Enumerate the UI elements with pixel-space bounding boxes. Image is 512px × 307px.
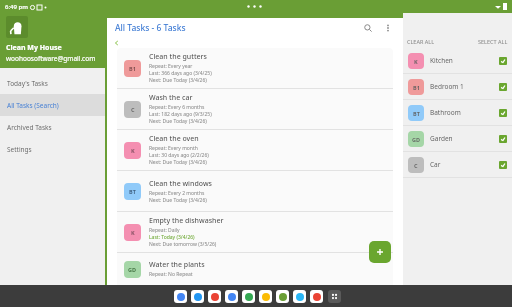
staticText: Water the plants: [149, 260, 205, 270]
button[interactable]: B1: [403, 74, 512, 99]
staticText: Repeat: No Repeat: [149, 271, 193, 278]
button[interactable]: BT: [117, 171, 393, 211]
staticText: Next: Due tomorrow (3/5/26): [149, 241, 217, 248]
staticText: Kitchen: [430, 56, 453, 65]
staticText: Last: 366 days ago (3/4/25): [149, 70, 212, 77]
button[interactable]: Photos: [259, 290, 272, 303]
staticText: Next: Due Today (3/4/26): [149, 77, 207, 84]
staticText: Clean My House: [6, 43, 62, 53]
staticText: CLEAR ALL: [407, 38, 435, 45]
staticText: Last: 30 days ago (2/2/26): [149, 152, 209, 159]
button[interactable]: BT: [403, 100, 512, 125]
staticText: GD: [412, 136, 421, 143]
staticText: C: [414, 162, 418, 169]
staticText: B1: [129, 65, 136, 72]
button[interactable]: K: [117, 130, 393, 170]
button[interactable]: All apps: [328, 290, 341, 303]
staticText: SELECT ALL: [478, 38, 508, 45]
button[interactable]: Add task: [369, 241, 391, 263]
staticText: Clean the oven: [149, 134, 199, 144]
staticText: Car: [430, 160, 441, 169]
staticText: Repeat: Every year: [149, 63, 193, 70]
staticText: K: [131, 229, 135, 236]
staticText: Today's Tasks: [7, 79, 48, 88]
staticText: Next: Due Today (3/4/26): [149, 118, 207, 125]
staticText: Repeat: Every 6 months: [149, 104, 205, 111]
staticText: BT: [413, 110, 420, 117]
button[interactable]: Clean My House: [276, 290, 289, 303]
staticText: Garden: [430, 134, 453, 143]
button[interactable]: GD: [117, 253, 393, 285]
button[interactable]: B1: [117, 48, 393, 88]
staticText: Repeat: Every month: [149, 145, 198, 152]
button[interactable]: CLEAR ALL: [407, 38, 435, 45]
staticText: Settings: [7, 145, 32, 154]
staticText: B1: [413, 84, 420, 91]
button[interactable]: K: [117, 212, 393, 252]
button[interactable]: Search: [174, 290, 187, 303]
button[interactable]: Today's Tasks: [0, 72, 105, 94]
staticText: K: [131, 147, 135, 154]
button[interactable]: K: [403, 48, 512, 73]
staticText: Next: Due Today (3/4/26): [149, 197, 207, 204]
button[interactable]: Chrome: [208, 290, 221, 303]
staticText: C: [131, 106, 135, 113]
staticText: Next: Due Today (3/4/26): [149, 159, 207, 166]
button[interactable]: Play Store: [242, 290, 255, 303]
staticText: Bathroom: [430, 108, 461, 117]
button[interactable]: Weather: [293, 290, 306, 303]
staticText: All Tasks (Search): [7, 101, 59, 110]
staticText: Clean the windows: [149, 179, 212, 189]
button[interactable]: C: [117, 89, 393, 129]
button[interactable]: All Tasks (Search): [0, 94, 105, 116]
staticText: BT: [129, 188, 136, 195]
staticText: Last: 182 days ago (9/3/25): [149, 111, 212, 118]
staticText: K: [414, 58, 418, 65]
staticText: GD: [128, 266, 137, 273]
staticText: Clean the gutters: [149, 52, 207, 62]
button[interactable]: Archived Tasks: [0, 116, 105, 138]
button[interactable]: App icon: [6, 16, 28, 38]
staticText: Archived Tasks: [7, 123, 52, 132]
staticText: Wash the car: [149, 93, 193, 103]
button[interactable]: More options: [381, 21, 395, 35]
button[interactable]: Gmail: [310, 290, 323, 303]
button[interactable]: Settings: [0, 138, 105, 160]
staticText: Bedroom 1: [430, 82, 464, 91]
staticText: Empty the dishwasher: [149, 216, 224, 226]
button[interactable]: Photos: [225, 290, 238, 303]
staticText: Last: Today (3/4/26): [149, 234, 195, 241]
button[interactable]: GD: [403, 126, 512, 151]
staticText: All Tasks - 6 Tasks: [115, 22, 186, 34]
staticText: woohoosoftware@gmail.com: [6, 54, 96, 63]
button[interactable]: Search: [361, 21, 375, 35]
button[interactable]: Messages: [191, 290, 204, 303]
button[interactable]: SELECT ALL: [478, 38, 508, 45]
button[interactable]: Back: [113, 39, 121, 47]
staticText: Repeat: Daily: [149, 227, 180, 234]
button[interactable]: C: [403, 152, 512, 177]
staticText: Repeat: Every 2 months: [149, 190, 205, 197]
staticText: 6:49 pm: [5, 3, 28, 11]
